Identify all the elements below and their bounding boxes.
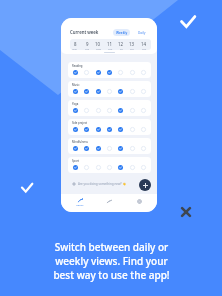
button[interactable]: Music [68,81,151,97]
button[interactable] [106,164,112,170]
button[interactable]: Settings [128,199,150,207]
staticText: Sat [130,47,134,50]
staticText: 11 [107,41,113,47]
staticText: Daily [138,31,146,35]
staticText: Are you doing something new? 👋 [78,182,127,186]
button[interactable]: 8 [70,39,81,50]
button[interactable] [106,88,112,94]
staticText: Sport [72,159,79,163]
button[interactable]: Habits [69,198,91,206]
button[interactable]: Daily [135,29,148,36]
staticText: Music [72,83,80,87]
staticText: Mindfulness [72,140,88,144]
button[interactable] [83,107,89,113]
button[interactable] [129,69,135,75]
button[interactable]: Reading [68,62,151,78]
button[interactable] [72,145,78,151]
button[interactable] [117,145,123,151]
button[interactable] [72,164,78,170]
button[interactable]: 13 [126,39,138,50]
button[interactable] [129,126,135,132]
button[interactable]: 12 [115,39,127,50]
button[interactable] [129,145,135,151]
button[interactable] [117,88,123,94]
button[interactable] [83,88,89,94]
staticText: 9 [86,41,89,47]
button[interactable]: Are you doing something new? 👋 [72,180,127,188]
button[interactable] [83,126,89,132]
button[interactable]: Weekly [113,29,130,36]
button[interactable] [95,69,101,75]
button[interactable] [106,145,112,151]
button[interactable]: Sport [68,157,151,173]
button[interactable] [117,107,123,113]
staticText: Current week [70,29,99,35]
button[interactable] [117,164,123,170]
staticText: 12 [118,41,124,47]
button[interactable]: 14 [138,39,150,50]
staticText: Thu [108,47,113,50]
staticText: Fri [120,47,123,50]
button[interactable] [106,126,112,132]
button[interactable] [95,126,101,132]
button[interactable] [129,107,135,113]
button[interactable] [95,145,101,151]
staticText: Mon [72,47,78,50]
staticText: 13 [129,41,135,47]
button[interactable] [106,69,112,75]
button[interactable] [117,126,123,132]
staticText: Reading [72,64,83,68]
button[interactable] [83,69,89,75]
button[interactable] [72,126,78,132]
button[interactable] [140,88,146,94]
staticText: Wed [96,47,101,50]
button[interactable] [117,69,123,75]
button[interactable] [83,145,89,151]
button[interactable] [106,107,112,113]
staticText: Weekly [116,31,128,35]
staticText: 8 [74,41,77,47]
button[interactable] [140,107,146,113]
staticText: Switch between daily or weekly views. Fi… [53,240,170,282]
button[interactable] [72,69,78,75]
button[interactable]: Side project [68,119,151,135]
button[interactable] [72,107,78,113]
button[interactable] [140,145,146,151]
button[interactable]: 11 [104,39,116,50]
button[interactable]: Mindfulness [68,138,151,154]
button[interactable]: 9 [81,39,93,50]
button[interactable] [140,164,146,170]
button[interactable] [129,164,135,170]
staticText: Tue [85,47,90,50]
button[interactable] [140,69,146,75]
staticText: 10 [95,41,101,47]
staticText: 14 [141,41,147,47]
button[interactable]: 10 [92,39,104,50]
staticText: Yoga [72,102,79,106]
button[interactable] [95,164,101,170]
button[interactable] [129,88,135,94]
staticText: Sun [142,47,147,50]
button[interactable]: Add habit [139,179,151,191]
button[interactable]: Statistics [98,199,120,207]
button[interactable]: Yoga [68,100,151,116]
button[interactable] [140,126,146,132]
button[interactable] [72,88,78,94]
button[interactable] [95,88,101,94]
staticText: Side project [72,121,88,125]
staticText: Habits [76,203,84,206]
button[interactable] [83,164,89,170]
button[interactable] [95,107,101,113]
